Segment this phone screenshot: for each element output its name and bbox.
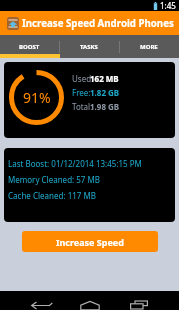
button[interactable]: MORE [119,35,179,58]
staticText: 1.98 GB [90,101,120,112]
staticText: MORE [140,43,158,51]
staticText: Free: [72,87,91,98]
staticText: TASKS [80,43,98,51]
staticText: Cache Cleaned: 117 MB [8,190,96,201]
button[interactable]: Recents [124,291,154,310]
button[interactable]: Increase Speed [22,231,158,252]
staticText: 91% [23,88,51,107]
button[interactable]: BOOST [0,35,59,58]
staticText: 162 MB [90,73,119,84]
button[interactable]: TASKS [59,35,119,58]
staticText: Last Boost: 01/12/2014 13:45:15 PM [8,158,142,169]
staticText: 1:45 [160,0,176,11]
button[interactable]: Back [27,291,57,310]
staticText: 1.82 GB [90,87,120,98]
staticText: Memory Cleaned: 57 MB [8,174,100,185]
button[interactable]: Increase Speed Android Phones [7,11,179,35]
staticText: Increase Speed [56,236,124,248]
button[interactable]: Last Boost: 01/12/2014 13:45:15 PM [4,148,175,222]
staticText: BOOST [19,43,40,51]
staticText: Total: [72,101,93,112]
button[interactable]: Home [75,291,105,310]
staticText: Used: [72,73,94,84]
staticText: Increase Speed Android Phones [22,17,174,30]
button[interactable]: 91% [4,62,175,138]
